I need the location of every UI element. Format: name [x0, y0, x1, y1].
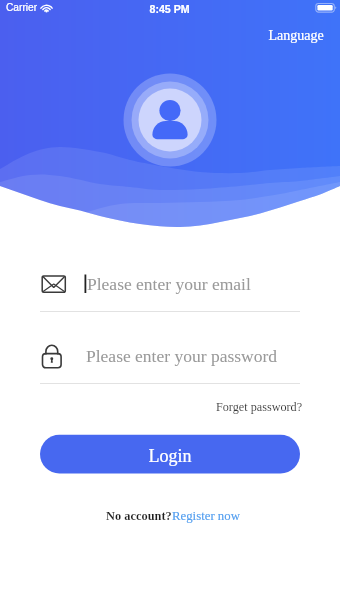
button[interactable]: Password input, Please enter your passwo… — [40, 340, 300, 384]
button[interactable]: Forget password? — [212, 397, 303, 416]
button[interactable]: Language — [265, 24, 329, 47]
button[interactable]: Email input, Please enter your email — [40, 268, 300, 312]
button[interactable]: Login — [40, 435, 300, 474]
button[interactable]: Register now — [171, 507, 239, 526]
